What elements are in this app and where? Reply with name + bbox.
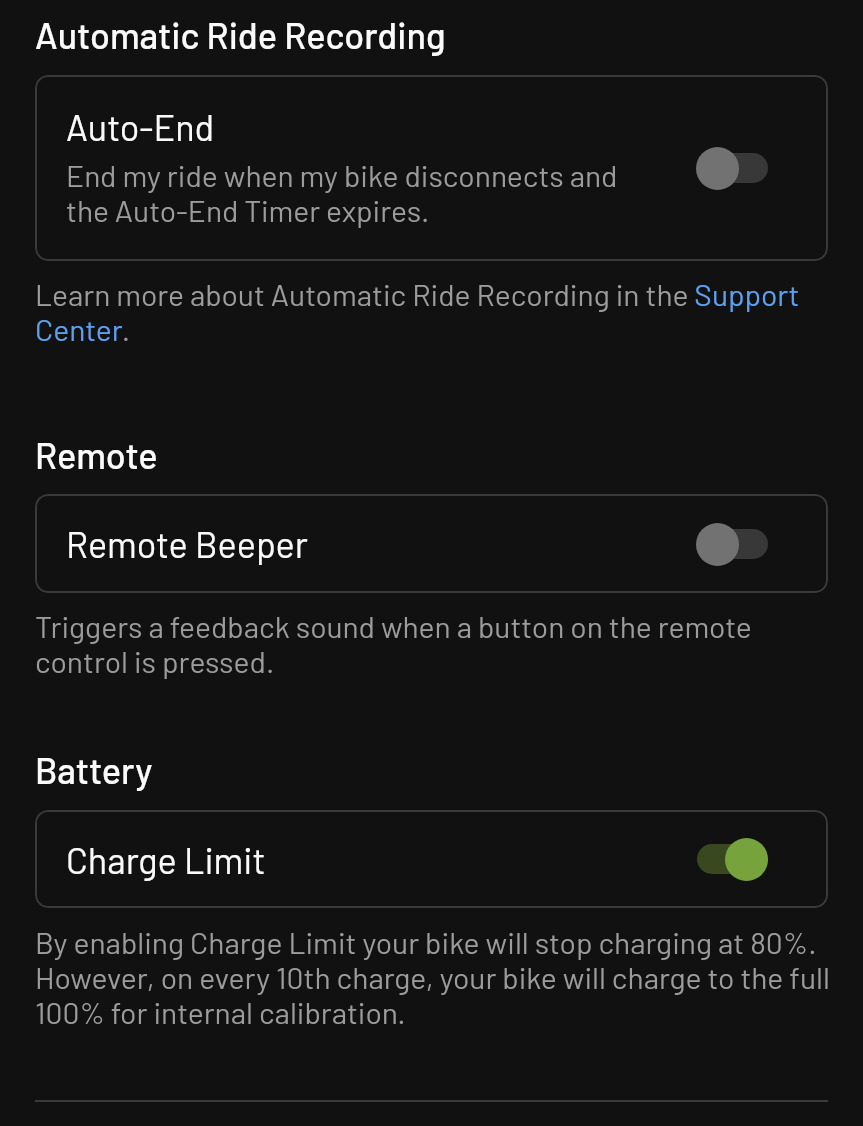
staticText: End my ride when my bike disconnects and… (66, 157, 641, 228)
button[interactable]: Auto-End (35, 75, 828, 261)
button[interactable]: Learn more about Automatic Ride Recordin… (35, 276, 845, 347)
button[interactable]: Auto-End (688, 139, 776, 197)
staticText: Charge Limit (66, 838, 688, 881)
button[interactable]: Charge Limit (688, 830, 776, 888)
staticText: Battery (35, 748, 153, 791)
staticText: By enabling Charge Limit your bike will … (35, 924, 845, 1030)
button[interactable]: Remote Beeper (688, 515, 776, 573)
staticText: Auto-End (66, 105, 215, 148)
staticText: Automatic Ride Recording (35, 13, 446, 56)
staticText: Remote (35, 433, 158, 476)
staticText: Remote Beeper (66, 522, 688, 565)
button[interactable]: Charge Limit (35, 810, 828, 908)
button[interactable]: Remote Beeper (35, 494, 828, 593)
staticText: Triggers a feedback sound when a button … (35, 608, 845, 679)
